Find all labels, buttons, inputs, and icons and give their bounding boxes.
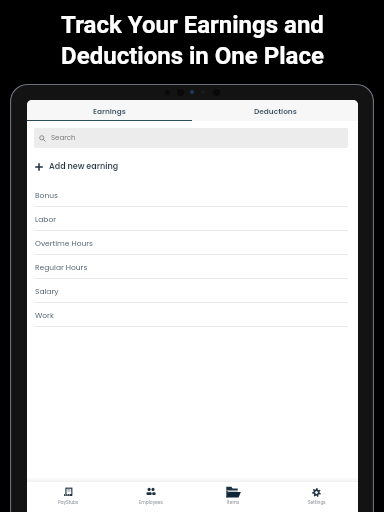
button[interactable]: Earnings (27, 100, 192, 121)
other: Items (226, 486, 241, 498)
staticText: Earnings (93, 106, 126, 116)
staticText: Deductions (254, 106, 297, 116)
button[interactable]: Add new earning (27, 158, 358, 175)
staticText: Labor (35, 214, 56, 224)
button[interactable]: Overtime Hours (27, 231, 358, 255)
staticText: Regular Hours (35, 262, 88, 272)
staticText: Employees (139, 499, 163, 505)
button[interactable]: Items (192, 482, 275, 509)
button[interactable]: Labor (27, 207, 358, 231)
staticText: Settings (308, 499, 326, 505)
staticText: Items (227, 499, 240, 505)
button[interactable]: Work (27, 303, 358, 327)
other: Employees (146, 487, 156, 497)
button[interactable]: Search (34, 128, 348, 148)
staticText: Bonus (35, 190, 58, 200)
staticText: Overtime Hours (35, 238, 94, 248)
other: Settings (312, 488, 321, 497)
staticText: Add new earning (49, 161, 119, 172)
button[interactable]: Employees (109, 482, 192, 509)
staticText: PayStubs (58, 499, 79, 505)
button[interactable]: Settings (275, 482, 358, 509)
button[interactable]: Deductions (192, 100, 358, 121)
staticText: Work (35, 310, 54, 320)
staticText: Search (51, 133, 76, 143)
staticText: Salary (35, 286, 59, 296)
other: PayStubs (64, 488, 72, 496)
button[interactable]: Salary (27, 279, 358, 303)
button[interactable]: Regular Hours (27, 255, 358, 279)
button[interactable]: PayStubs (27, 482, 109, 509)
button[interactable]: Bonus (27, 183, 358, 207)
staticText: Track Your Earnings and Deductions in On… (61, 11, 324, 70)
